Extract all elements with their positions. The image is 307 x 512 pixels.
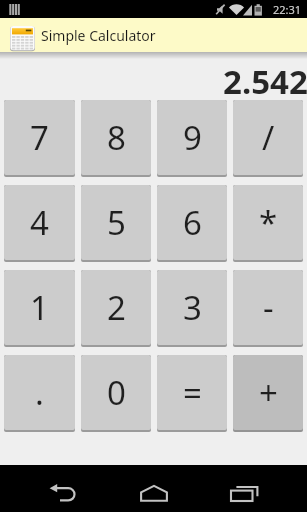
button[interactable]: 2: [81, 270, 151, 347]
button[interactable]: 5: [81, 185, 151, 262]
button[interactable]: 9: [157, 100, 227, 177]
button[interactable]: 4: [4, 185, 75, 262]
staticText: 7: [30, 115, 49, 160]
button[interactable]: *: [233, 185, 303, 262]
button[interactable]: [108, 465, 199, 512]
button[interactable]: [199, 465, 290, 512]
staticText: 22:31: [273, 2, 302, 17]
button[interactable]: =: [157, 355, 227, 432]
button[interactable]: 7: [4, 100, 75, 177]
button[interactable]: +: [233, 355, 303, 432]
staticText: -: [263, 285, 274, 330]
staticText: 2: [107, 285, 126, 330]
staticText: +: [259, 370, 278, 415]
staticText: 0: [107, 370, 126, 415]
staticText: =: [183, 370, 202, 415]
staticText: 6: [183, 200, 202, 245]
staticText: 2.542: [223, 59, 307, 98]
staticText: *: [259, 200, 278, 245]
staticText: 4: [30, 200, 49, 245]
staticText: .: [35, 370, 44, 415]
staticText: 3: [183, 285, 202, 330]
button[interactable]: -: [233, 270, 303, 347]
button[interactable]: 8: [81, 100, 151, 177]
staticText: 9: [183, 115, 202, 160]
staticText: 8: [107, 115, 126, 160]
staticText: 1: [30, 285, 49, 330]
button[interactable]: [17, 465, 108, 512]
button[interactable]: .: [4, 355, 75, 432]
staticText: 5: [107, 200, 126, 245]
button[interactable]: /: [233, 100, 303, 177]
button[interactable]: 6: [157, 185, 227, 262]
staticText: Simple Calculator: [41, 26, 156, 45]
button[interactable]: Simple Calculator: [0, 18, 307, 52]
button[interactable]: 0: [81, 355, 151, 432]
button[interactable]: 3: [157, 270, 227, 347]
button[interactable]: 1: [4, 270, 75, 347]
staticText: /: [262, 115, 275, 160]
